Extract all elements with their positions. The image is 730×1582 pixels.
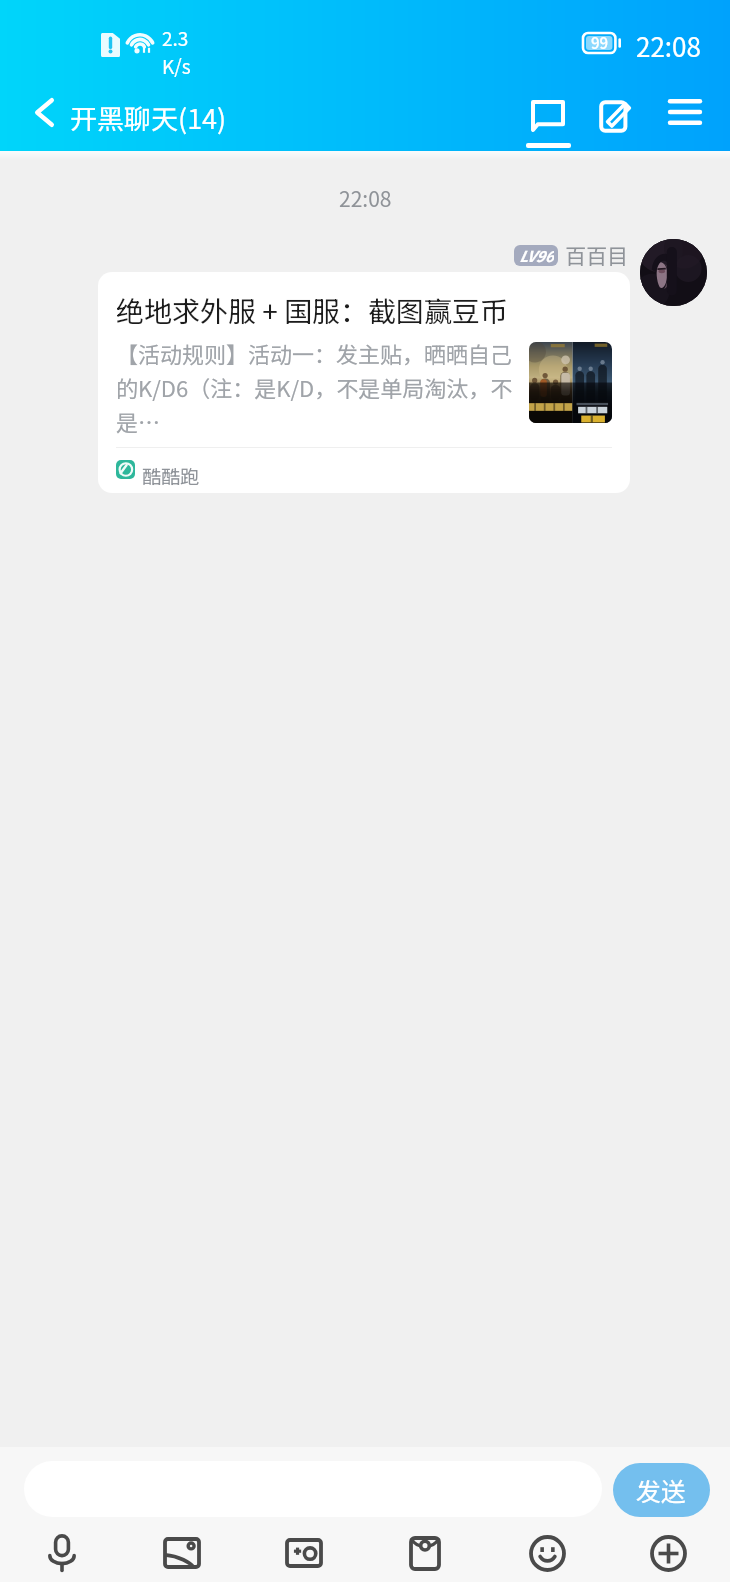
button[interactable]: Gift xyxy=(397,1525,453,1581)
button[interactable]: 绝地求外服 + 国服：截图赢豆币 xyxy=(98,272,630,493)
staticText: 【活动规则】活动一：发主贴，晒晒自己的K/D6（注：是K/D，不是单局淘汰，不是… xyxy=(116,337,517,437)
staticText: 发送 xyxy=(636,1472,687,1508)
staticText: 绝地求外服 + 国服：截图赢豆币 xyxy=(116,290,509,331)
button[interactable]: Emoji xyxy=(519,1525,575,1581)
staticText: 百百目 xyxy=(565,240,628,270)
staticText: LV96 xyxy=(519,245,554,266)
button[interactable]: Photo xyxy=(154,1525,210,1581)
button[interactable]: Menu xyxy=(656,84,714,140)
button[interactable]: Back xyxy=(13,86,75,138)
staticText: 开黑聊天(14) xyxy=(70,98,227,137)
button[interactable]: Sticker xyxy=(276,1525,332,1581)
staticText: K/s xyxy=(162,52,191,80)
staticText: 22:08 xyxy=(339,183,392,213)
button[interactable]: More xyxy=(640,1525,696,1581)
button[interactable]: Voice message xyxy=(34,1525,90,1581)
staticText: 99 xyxy=(591,32,609,54)
staticText: 2.3 xyxy=(162,24,189,52)
button[interactable]: Compose xyxy=(586,88,644,144)
button[interactable]: Messages xyxy=(518,88,578,144)
staticText: 22:08 xyxy=(636,27,701,65)
button[interactable]: 发送 xyxy=(613,1463,710,1517)
button[interactable]: 开黑聊天(14) xyxy=(70,98,227,137)
staticText: 酷酷跑 xyxy=(142,462,200,490)
